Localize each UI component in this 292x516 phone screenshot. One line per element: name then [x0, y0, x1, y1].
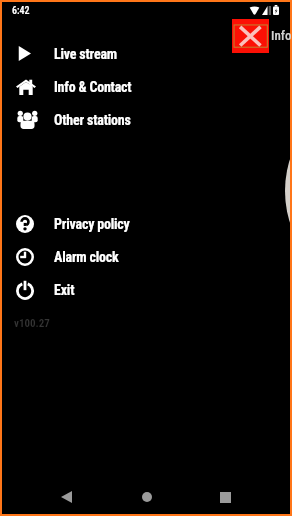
staticText: Alarm clock	[54, 249, 119, 265]
staticText: Live stream	[54, 46, 117, 62]
staticText: Exit	[54, 282, 75, 298]
button[interactable]: Info & Contact	[2, 70, 290, 103]
button[interactable]: Close ad	[232, 19, 269, 53]
staticText: Other stations	[54, 112, 131, 128]
button[interactable]: Privacy policy	[2, 207, 290, 240]
button[interactable]: Other stations	[2, 103, 290, 136]
staticText: Info & Contact	[54, 79, 132, 95]
button[interactable]: Recent apps	[213, 485, 237, 509]
button[interactable]: Back	[54, 485, 78, 509]
staticText: Info	[271, 28, 292, 43]
staticText: v100.27	[14, 317, 50, 330]
staticText: 6:42	[12, 5, 30, 17]
button[interactable]: Exit	[2, 273, 290, 306]
button[interactable]: Home	[135, 485, 159, 509]
button[interactable]: Live stream	[2, 37, 290, 70]
button[interactable]: Alarm clock	[2, 240, 290, 273]
staticText: Privacy policy	[54, 216, 130, 232]
